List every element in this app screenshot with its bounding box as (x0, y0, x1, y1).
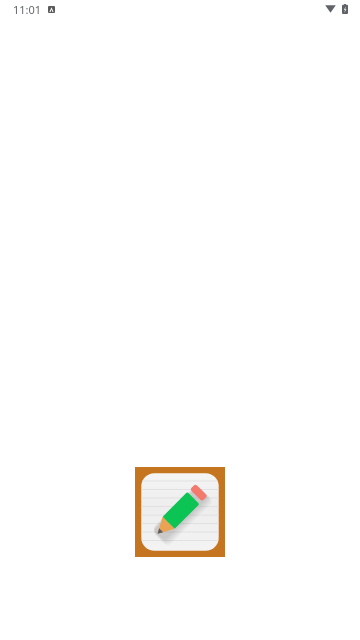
button[interactable]: Notes app icon (135, 467, 225, 557)
staticText: 11:01 (13, 2, 42, 17)
